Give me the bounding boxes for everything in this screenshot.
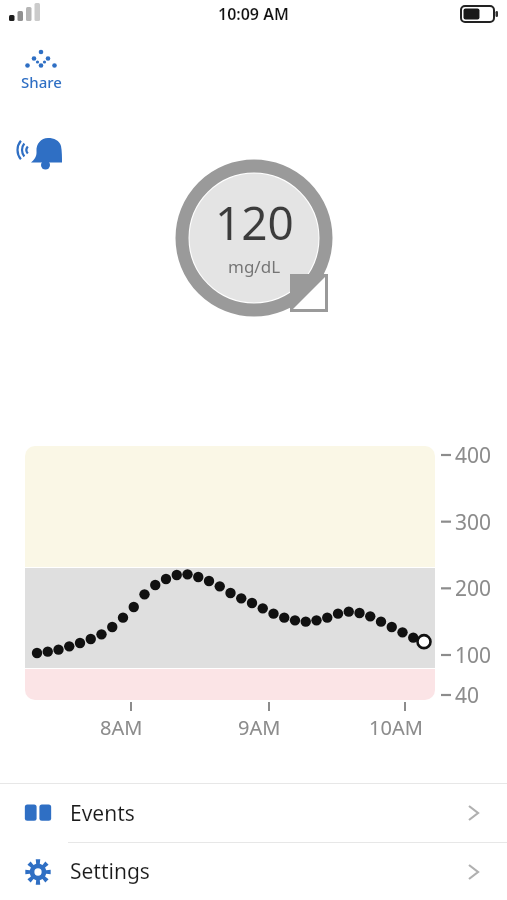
- staticText: 40: [455, 681, 480, 710]
- staticText: Share: [21, 72, 62, 92]
- staticText: 120: [215, 191, 294, 254]
- button[interactable]: Current glucose 120 mg/dL: [176, 160, 332, 316]
- staticText: Settings: [70, 857, 150, 886]
- button[interactable]: Settings: [0, 843, 507, 900]
- staticText: 8AM: [100, 714, 143, 741]
- staticText: Events: [70, 799, 135, 828]
- staticText: 100: [455, 641, 492, 670]
- staticText: mg/dL: [228, 255, 281, 278]
- button[interactable]: Alerts: [12, 124, 68, 168]
- staticText: 10:09 AM: [218, 3, 289, 25]
- button[interactable]: Share: [8, 46, 74, 94]
- staticText: 300: [455, 508, 492, 537]
- staticText: 200: [455, 574, 492, 603]
- staticText: 400: [455, 441, 492, 470]
- staticText: 9AM: [238, 714, 281, 741]
- button[interactable]: Events: [0, 784, 507, 842]
- staticText: 10AM: [369, 714, 423, 741]
